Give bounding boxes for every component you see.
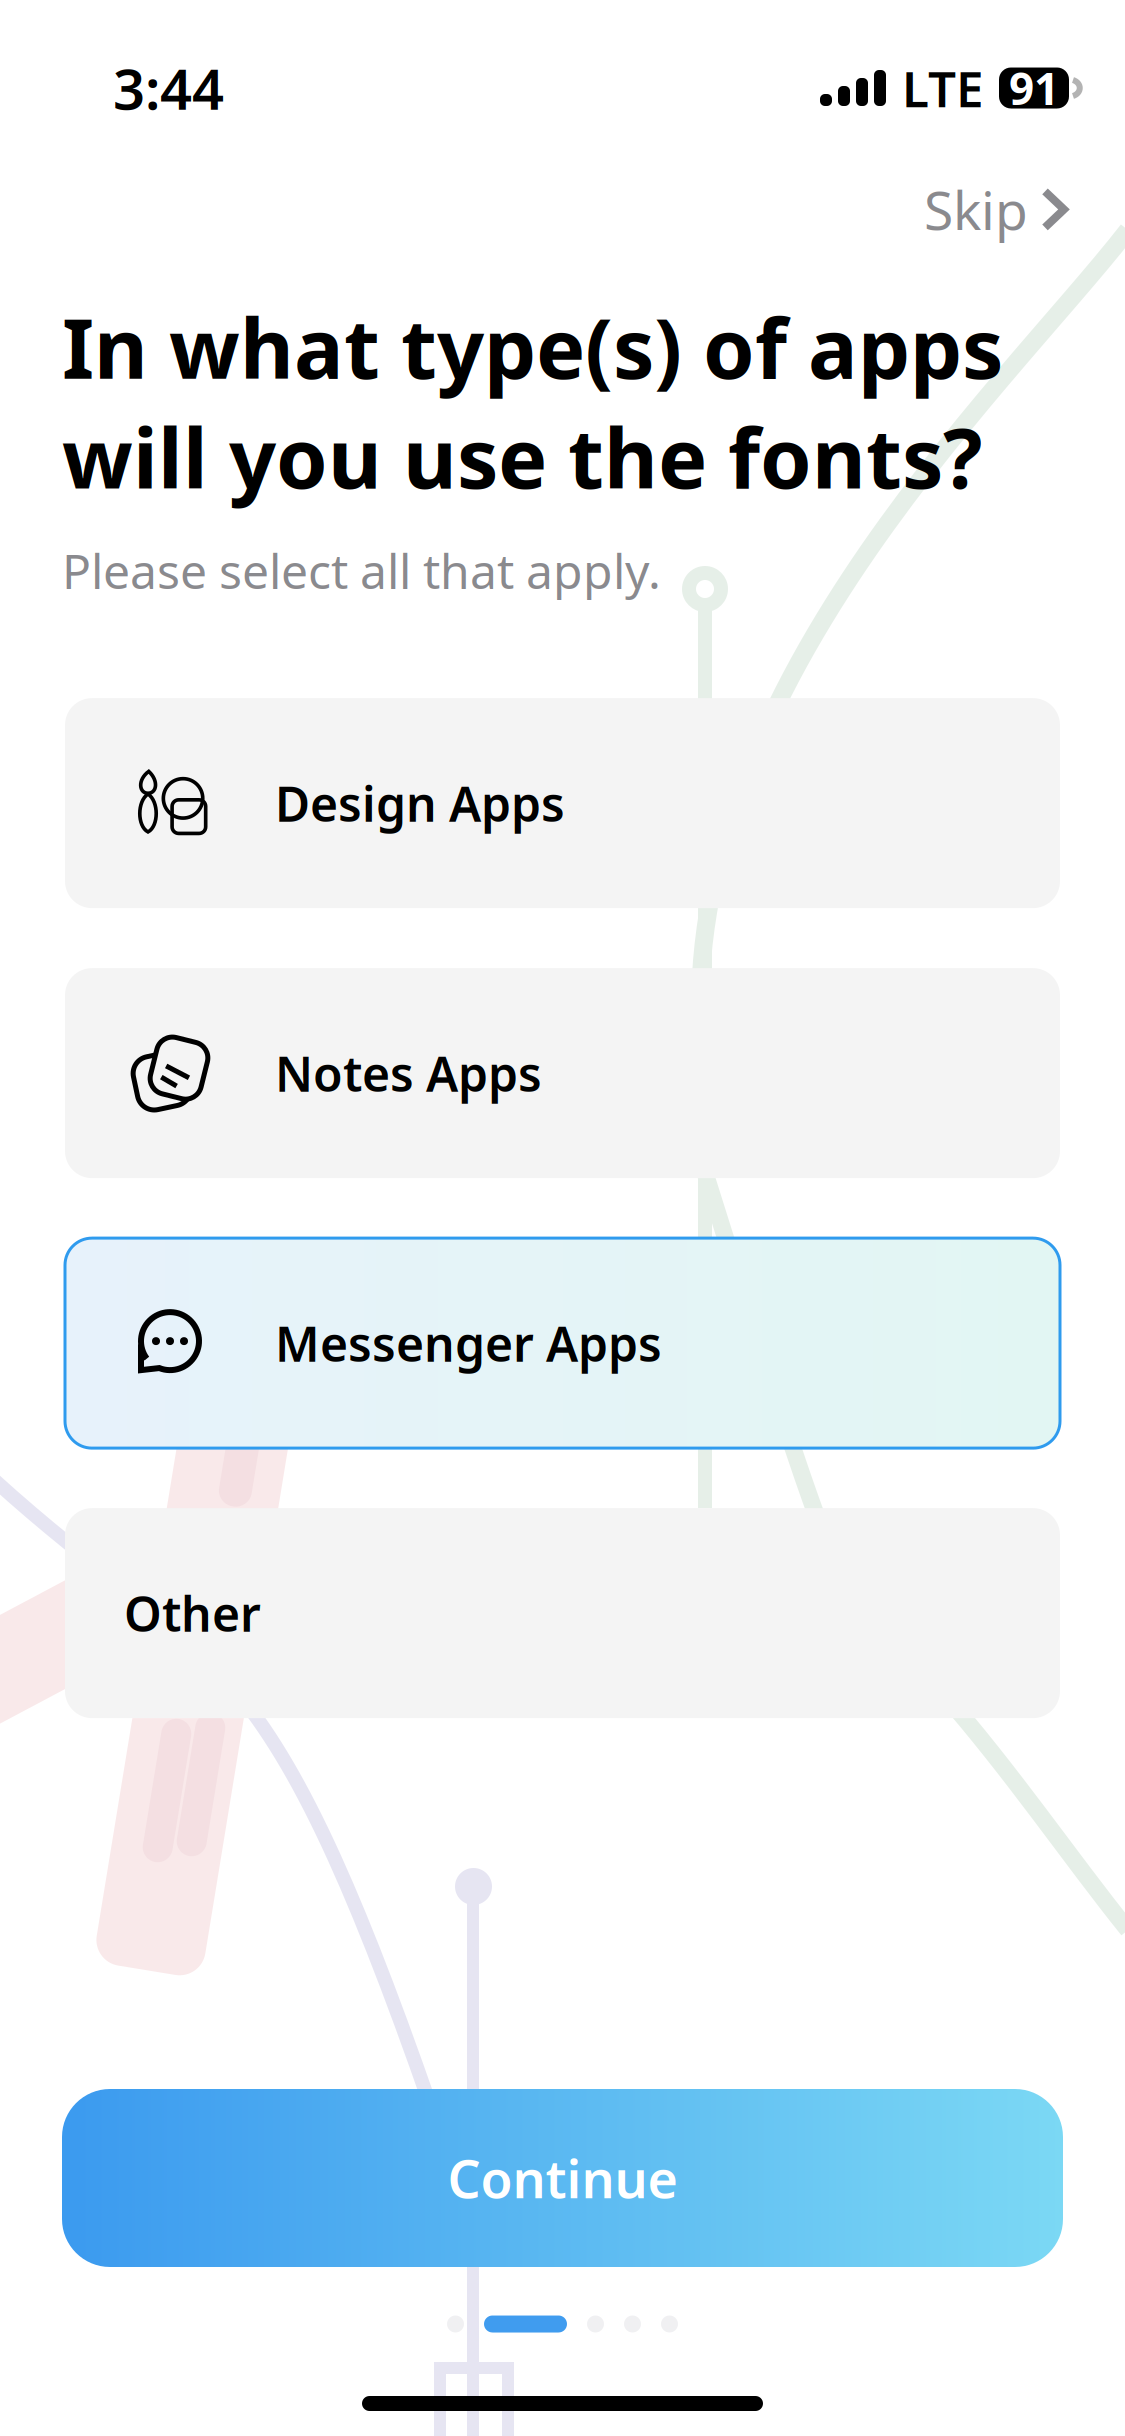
staticText: In what type(s) of apps will you use the… xyxy=(62,292,1003,511)
staticText: 3:44 xyxy=(113,51,224,125)
staticText: Messenger Apps xyxy=(275,1311,662,1375)
staticText: 91 xyxy=(1009,59,1059,117)
staticText: Please select all that apply. xyxy=(62,538,661,602)
button[interactable]: Notes Apps xyxy=(65,968,1060,1178)
button[interactable]: Continue xyxy=(62,2089,1063,2267)
staticText: LTE xyxy=(902,55,984,121)
staticText: Other xyxy=(124,1581,261,1645)
staticText: Continue xyxy=(447,2143,677,2213)
button[interactable]: Design Apps xyxy=(65,698,1060,908)
button[interactable]: Messenger Apps xyxy=(65,1238,1060,1448)
button[interactable]: Other xyxy=(65,1508,1060,1718)
staticText: Skip xyxy=(924,174,1028,245)
staticText: Notes Apps xyxy=(275,1041,542,1105)
button[interactable]: Skip xyxy=(924,156,1125,263)
staticText: Design Apps xyxy=(275,771,565,835)
